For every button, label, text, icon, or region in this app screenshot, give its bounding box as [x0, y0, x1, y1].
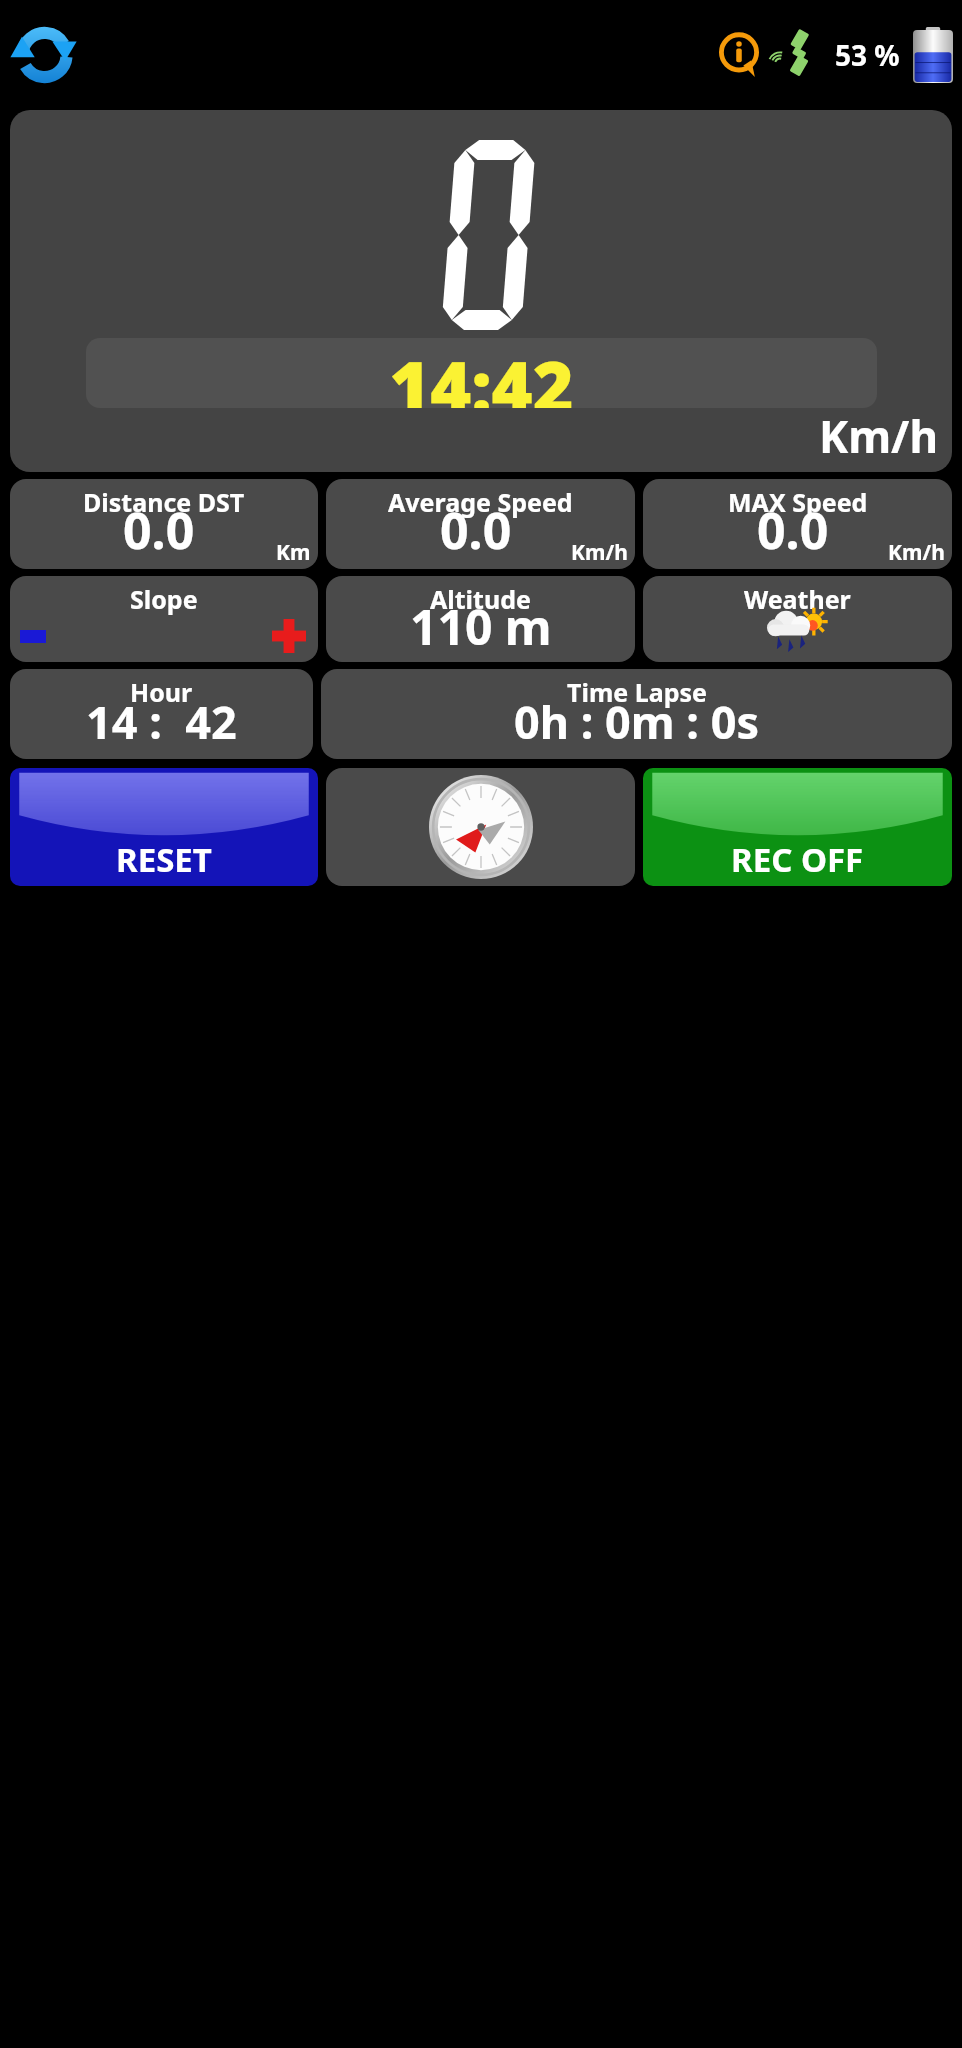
- button[interactable]: Distance DST: [10, 479, 318, 569]
- staticText: Weather: [744, 582, 851, 616]
- staticText: 0h : 0m : 0s: [514, 691, 760, 752]
- button[interactable]: Refresh: [5, 17, 81, 93]
- staticText: Time Lapse: [567, 675, 707, 709]
- button[interactable]: REC OFF: [643, 768, 952, 886]
- staticText: MAX Speed: [728, 485, 868, 519]
- staticText: Km/h: [888, 538, 945, 567]
- button[interactable]: Average Speed: [326, 479, 635, 569]
- staticText: RESET: [116, 837, 212, 882]
- button[interactable]: Compass: [326, 768, 635, 886]
- button[interactable]: MAX Speed: [643, 479, 952, 569]
- staticText: 0.0: [440, 496, 512, 564]
- staticText: 14:42: [389, 338, 574, 408]
- button[interactable]: Weather: [643, 576, 952, 662]
- staticText: Hour: [130, 675, 193, 709]
- staticText: Km/h: [819, 406, 938, 466]
- staticText: 110 m: [410, 594, 552, 659]
- button[interactable]: Time Lapse: [321, 669, 952, 759]
- staticText: Km: [276, 538, 311, 567]
- button[interactable]: Slope plus: [272, 619, 306, 653]
- staticText: 14 : 42: [86, 691, 237, 752]
- staticText: 0.0: [123, 496, 195, 564]
- button[interactable]: Battery level: [913, 27, 953, 83]
- staticText: Altitude: [430, 582, 531, 616]
- staticText: Distance DST: [83, 485, 245, 519]
- button[interactable]: Hour: [10, 669, 313, 759]
- staticText: 53 %: [835, 36, 900, 74]
- button[interactable]: Slope: [10, 576, 318, 662]
- button[interactable]: RESET: [10, 768, 318, 886]
- button[interactable]: 14:42: [86, 338, 877, 408]
- button[interactable]: Information: [717, 33, 761, 77]
- staticText: REC OFF: [731, 837, 864, 882]
- button[interactable]: Altitude: [326, 576, 635, 662]
- button[interactable]: 14:42: [10, 110, 952, 472]
- staticText: Average Speed: [388, 485, 573, 519]
- staticText: 0.0: [757, 496, 829, 564]
- staticText: Slope: [130, 582, 198, 616]
- staticText: Km/h: [571, 538, 628, 567]
- button[interactable]: GPS signal: [773, 31, 821, 79]
